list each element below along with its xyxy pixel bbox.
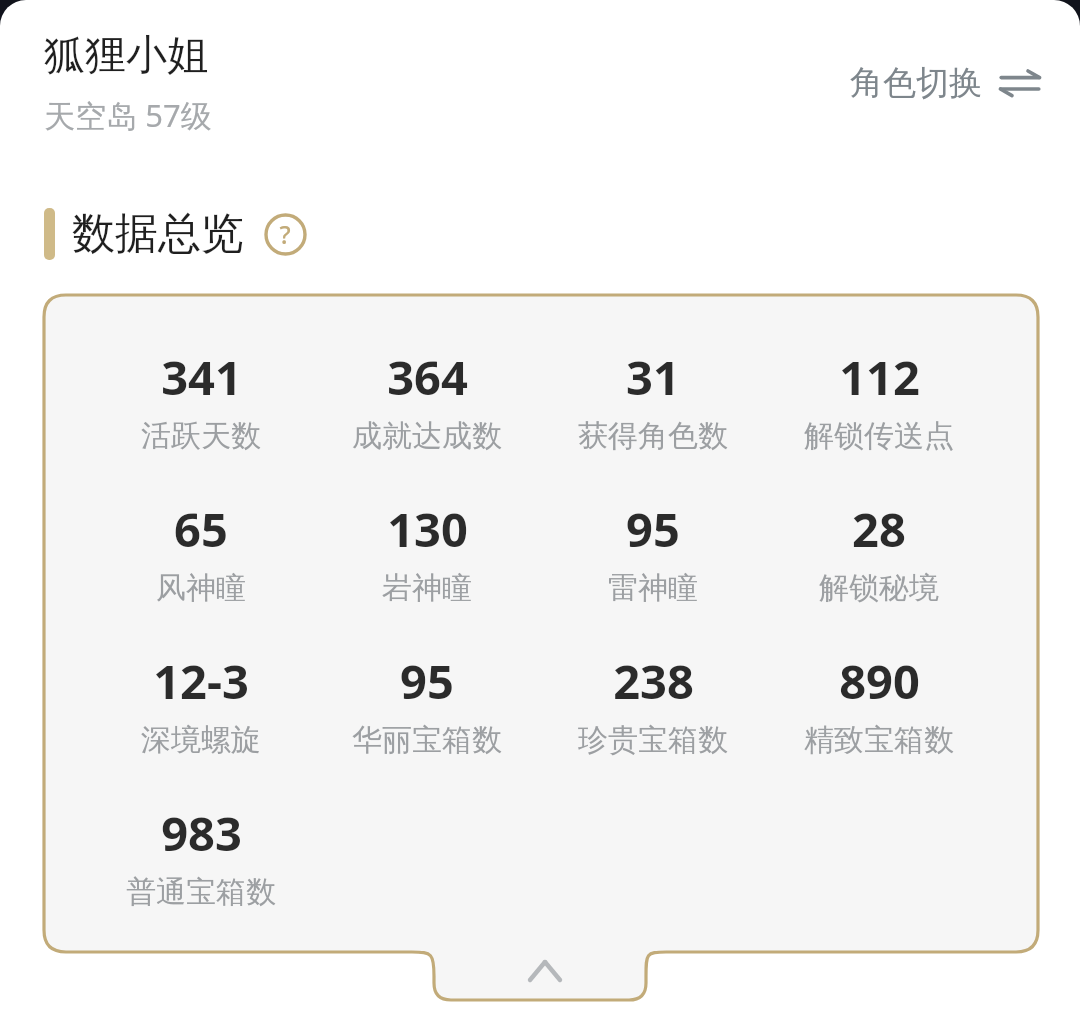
staticText: 364 [387, 345, 468, 409]
button[interactable]: 28 [766, 497, 992, 649]
staticText: 狐狸小姐 [44, 30, 208, 82]
staticText: 角色切换 [850, 62, 982, 104]
button[interactable]: 角色切换 [826, 42, 1080, 124]
staticText: 解锁秘境 [819, 569, 939, 607]
staticText: 岩神瞳 [382, 569, 472, 607]
button[interactable]: 130 [314, 497, 540, 649]
staticText: 华丽宝箱数 [352, 721, 502, 759]
button[interactable]: 95 [540, 497, 766, 649]
staticText: ? [279, 217, 291, 251]
button[interactable]: 31 [540, 345, 766, 497]
staticText: 深境螺旋 [141, 721, 261, 759]
button[interactable]: 12-3 [88, 649, 314, 801]
staticText: 天空岛 57级 [44, 94, 212, 136]
staticText: 精致宝箱数 [804, 721, 954, 759]
button[interactable]: 数据总览卡片 [0, 0, 1080, 1031]
staticText: 活跃天数 [141, 417, 261, 455]
staticText: 31 [626, 345, 680, 409]
staticText: 130 [387, 497, 468, 561]
button[interactable]: 95 [314, 649, 540, 801]
staticText: 获得角色数 [578, 417, 728, 455]
staticText: 解锁传送点 [804, 417, 954, 455]
button[interactable]: 890 [766, 649, 992, 801]
staticText: 普通宝箱数 [126, 873, 276, 911]
staticText: 风神瞳 [156, 569, 246, 607]
button[interactable]: 983 [88, 801, 314, 953]
staticText: 雷神瞳 [608, 569, 698, 607]
button[interactable]: 65 [88, 497, 314, 649]
other: 角色切换 [1000, 68, 1040, 98]
staticText: 28 [852, 497, 906, 561]
staticText: 890 [839, 649, 920, 713]
staticText: 珍贵宝箱数 [578, 721, 728, 759]
button[interactable]: 364 [314, 345, 540, 497]
button[interactable]: 说明 [262, 211, 308, 257]
staticText: 95 [400, 649, 454, 713]
staticText: 12-3 [153, 649, 249, 713]
staticText: 341 [161, 345, 242, 409]
staticText: 成就达成数 [352, 417, 502, 455]
button[interactable]: 238 [540, 649, 766, 801]
staticText: 983 [161, 801, 242, 865]
staticText: 112 [839, 345, 920, 409]
staticText: 95 [626, 497, 680, 561]
staticText: 238 [613, 649, 694, 713]
staticText: 65 [174, 497, 228, 561]
staticText: 数据总览 [72, 207, 244, 261]
button[interactable]: 112 [766, 345, 992, 497]
button[interactable]: 341 [88, 345, 314, 497]
